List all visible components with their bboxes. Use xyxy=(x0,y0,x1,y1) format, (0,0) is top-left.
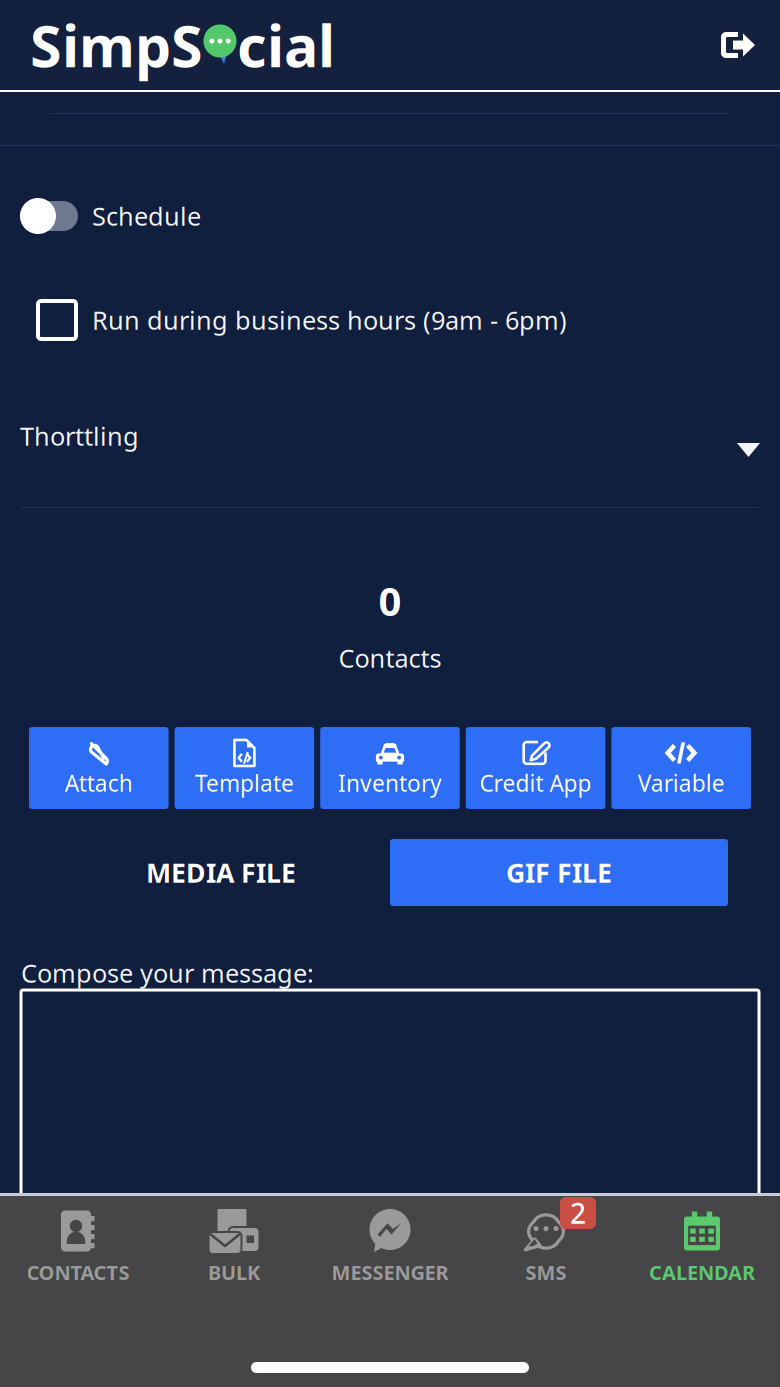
staticText: SMS xyxy=(525,1259,566,1286)
button[interactable]: Run during business hours (9am - 6pm) xyxy=(38,301,567,339)
staticText: GIF FILE xyxy=(506,855,612,890)
staticText: Run during business hours (9am - 6pm) xyxy=(92,303,567,337)
staticText: Schedule xyxy=(92,199,201,233)
staticText: Template xyxy=(195,768,294,798)
staticText: cial xyxy=(237,7,335,83)
button[interactable]: Log out xyxy=(720,29,756,61)
button[interactable]: Schedule xyxy=(20,198,201,234)
button[interactable]: Inventory xyxy=(320,727,460,809)
staticText: CALENDAR xyxy=(649,1259,755,1286)
button[interactable]: CONTACTS xyxy=(0,1209,156,1286)
staticText: Inventory xyxy=(338,768,442,798)
staticText: SimpS xyxy=(30,7,203,83)
button[interactable]: Variable xyxy=(611,727,751,809)
staticText: Credit App xyxy=(480,768,592,798)
button[interactable]: Thorttling xyxy=(0,420,780,452)
staticText: MEDIA FILE xyxy=(146,855,296,890)
staticText: Variable xyxy=(638,768,725,798)
staticText: Thorttling xyxy=(20,419,139,453)
button[interactable]: Credit App xyxy=(466,727,605,809)
staticText: BULK xyxy=(208,1259,260,1286)
staticText: MESSENGER xyxy=(331,1259,448,1286)
staticText: 2 xyxy=(570,1194,586,1232)
staticText: 0 xyxy=(378,574,401,627)
button[interactable]: Template xyxy=(175,727,314,809)
button[interactable]: BULK xyxy=(156,1209,312,1286)
button[interactable]: 2 xyxy=(468,1209,624,1286)
staticText: Compose your message: xyxy=(21,956,314,990)
button[interactable]: GIF FILE xyxy=(390,839,728,906)
button[interactable]: Attach xyxy=(29,727,169,809)
button[interactable]: MESSENGER xyxy=(312,1209,468,1286)
staticText: Attach xyxy=(65,768,133,798)
button[interactable]: MEDIA FILE xyxy=(52,839,390,906)
staticText: CONTACTS xyxy=(26,1259,129,1286)
button[interactable]: CALENDAR xyxy=(624,1209,780,1286)
staticText: Contacts xyxy=(338,641,441,675)
